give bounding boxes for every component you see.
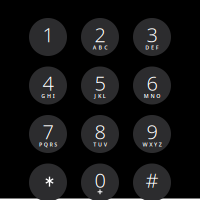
staticText: S — [54, 141, 57, 148]
staticText: V — [104, 141, 107, 148]
button[interactable]: 3 — [133, 18, 171, 56]
staticText: H — [47, 92, 51, 100]
staticText: X — [149, 141, 152, 148]
staticText: 8 — [94, 118, 105, 145]
button[interactable]: 4 — [29, 66, 67, 104]
staticText: M — [144, 92, 149, 100]
staticText: Y — [154, 141, 157, 148]
button[interactable]: 0 — [81, 163, 119, 200]
button[interactable]: 7 — [29, 115, 67, 153]
staticText: I — [53, 92, 55, 100]
staticText: P — [39, 141, 42, 148]
staticText: K — [98, 92, 101, 100]
button[interactable]: 9 — [133, 115, 171, 153]
staticText: F — [156, 44, 159, 51]
staticText: L — [103, 92, 106, 100]
staticText: 4 — [42, 70, 53, 96]
staticText: 7 — [42, 118, 53, 145]
staticText: Z — [159, 141, 162, 148]
staticText: B — [98, 44, 102, 51]
staticText: D — [145, 44, 149, 51]
staticText: W — [142, 141, 147, 148]
staticText: 5 — [94, 70, 105, 96]
staticText: E — [151, 44, 154, 51]
staticText: Q — [44, 141, 48, 148]
staticText: 0 — [94, 167, 105, 193]
button[interactable]: 8 — [81, 115, 119, 153]
button[interactable]: # — [133, 163, 171, 200]
staticText: # — [145, 167, 158, 193]
staticText: C — [104, 44, 107, 51]
button[interactable]: 6 — [133, 66, 171, 104]
staticText: 2 — [94, 21, 105, 48]
staticText: U — [98, 141, 102, 148]
button[interactable] — [29, 163, 67, 200]
button[interactable]: 2 — [81, 18, 119, 56]
button[interactable]: 1 — [29, 18, 67, 56]
staticText: 1 — [42, 21, 53, 48]
staticText: T — [93, 141, 96, 148]
staticText: A — [93, 44, 97, 51]
staticText: R — [49, 141, 52, 148]
staticText: O — [156, 92, 160, 100]
staticText: J — [94, 92, 96, 100]
staticText: G — [41, 92, 45, 100]
staticText: 6 — [146, 70, 157, 96]
staticText: 9 — [146, 118, 157, 145]
button[interactable]: 5 — [81, 66, 119, 104]
staticText: 3 — [146, 21, 157, 48]
staticText: N — [150, 92, 154, 100]
